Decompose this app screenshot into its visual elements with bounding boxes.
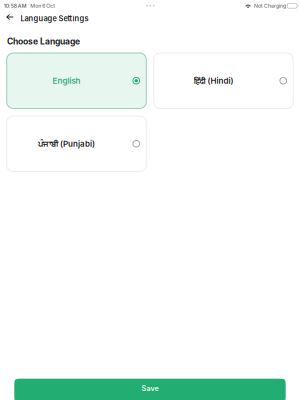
staticText: Language Settings — [21, 14, 89, 23]
button[interactable]: हिंदी (Hindi) — [154, 53, 293, 108]
staticText: 10:58 AM — [4, 3, 27, 9]
staticText: English — [52, 76, 80, 86]
button[interactable]: ਪੰਜਾਬੀ (Punjabi) — [7, 116, 146, 171]
staticText: Choose Language — [7, 36, 80, 46]
button[interactable]: Back — [3, 10, 16, 27]
staticText: Not Charging — [254, 3, 286, 9]
staticText: ਪੰਜਾਬੀ (Punjabi) — [38, 139, 95, 149]
staticText: Save — [141, 384, 158, 393]
staticText: Mon 6 Oct — [30, 3, 55, 9]
button[interactable]: Save — [14, 379, 286, 400]
staticText: हिंदी (Hindi) — [193, 75, 233, 86]
button[interactable]: English — [7, 53, 146, 108]
